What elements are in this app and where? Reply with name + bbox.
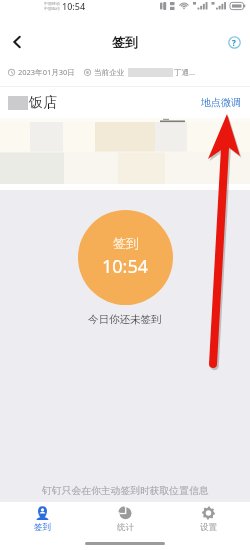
staticText: 当前企业: [94, 68, 124, 77]
staticText: 地点微调: [201, 96, 241, 109]
staticText: 钉钉只会在你主动签到时获取位置信息: [42, 485, 209, 497]
button[interactable]: 签到: [0, 505, 84, 534]
staticText: 今日你还未签到: [88, 313, 162, 326]
button[interactable]: Help: [223, 31, 245, 53]
button[interactable]: 签到: [78, 210, 173, 305]
staticText: 中国移动: [44, 1, 60, 6]
staticText: 设置: [200, 522, 217, 533]
staticText: 2023年01月30日: [18, 67, 75, 77]
staticText: 签到: [112, 34, 138, 50]
staticText: 统计: [117, 522, 134, 533]
staticText: 签到: [34, 522, 51, 533]
staticText: 丁通...: [174, 67, 196, 77]
staticText: 中国电信: [44, 6, 60, 11]
staticText: 10:54: [62, 0, 86, 12]
button[interactable]: Back: [4, 29, 30, 55]
staticText: 10:54: [102, 254, 149, 279]
staticText: 饭店: [29, 94, 57, 112]
button[interactable]: 统计: [84, 505, 167, 534]
button[interactable]: 设置: [167, 505, 250, 534]
staticText: ?: [232, 37, 236, 48]
button[interactable]: 地点微调: [199, 94, 243, 111]
staticText: 签到: [113, 235, 139, 251]
